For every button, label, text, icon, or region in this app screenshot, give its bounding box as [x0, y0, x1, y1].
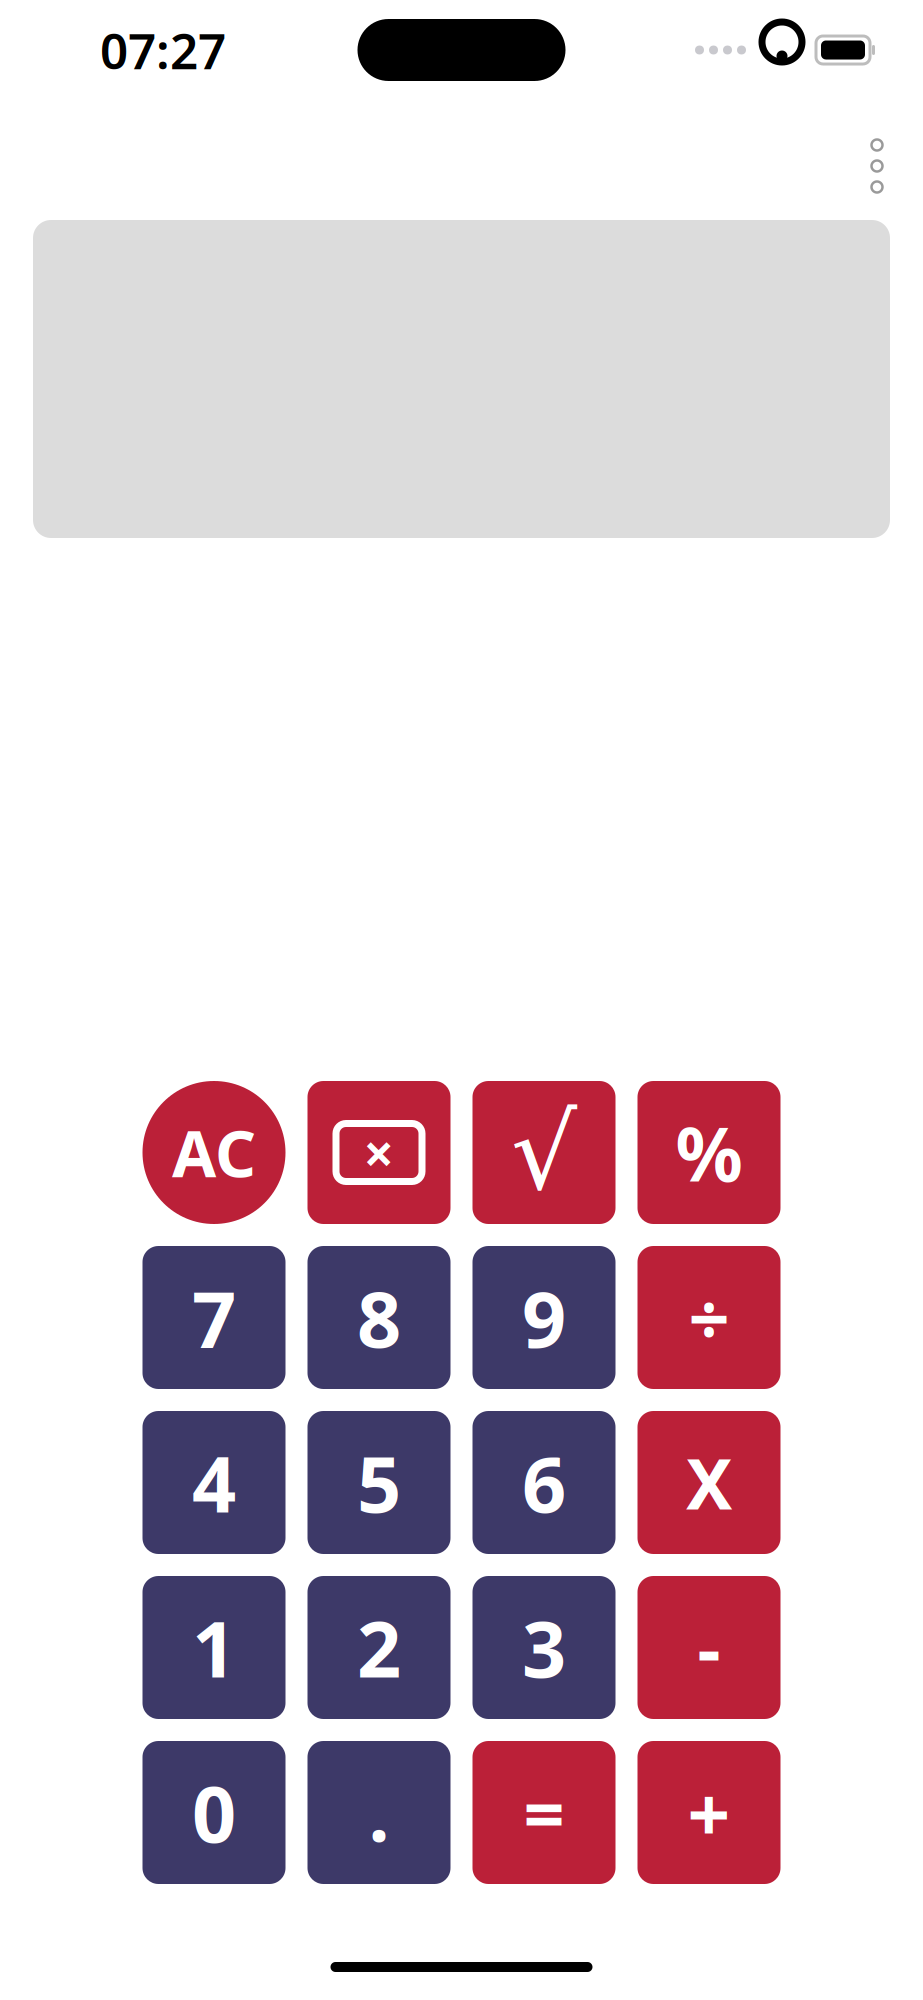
button[interactable]: ÷ [637, 1246, 780, 1389]
button[interactable]: = [472, 1741, 615, 1884]
button[interactable]: % [637, 1081, 780, 1224]
button[interactable]: X [637, 1411, 780, 1554]
button[interactable]: More options [851, 126, 903, 206]
button[interactable]: 4 [142, 1411, 285, 1554]
button[interactable]: 9 [472, 1246, 615, 1389]
button[interactable]: 7 [142, 1246, 285, 1389]
button[interactable]: 6 [472, 1411, 615, 1554]
button[interactable]: Backspace [307, 1081, 450, 1224]
button[interactable]: 5 [307, 1411, 450, 1554]
staticText: % [675, 1103, 742, 1202]
staticText: 7 [192, 1266, 236, 1369]
staticText: 2 [357, 1596, 401, 1699]
staticText: 9 [522, 1266, 566, 1369]
button[interactable]: 1 [142, 1576, 285, 1719]
button[interactable]: 3 [472, 1576, 615, 1719]
button[interactable]: . [307, 1741, 450, 1884]
button[interactable]: 0 [142, 1741, 285, 1884]
staticText: AC [172, 1110, 256, 1195]
staticText: 0 [192, 1761, 236, 1864]
staticText: 3 [522, 1596, 566, 1699]
staticText: × [363, 1117, 394, 1188]
button[interactable]: 8 [307, 1246, 450, 1389]
button[interactable]: AC [142, 1081, 285, 1224]
staticText: 5 [357, 1431, 401, 1534]
staticText: = [523, 1765, 564, 1860]
button[interactable]: Square root [472, 1081, 615, 1224]
staticText: + [687, 1763, 730, 1862]
staticText: 8 [357, 1266, 401, 1369]
staticText: 07:27 [100, 17, 226, 83]
staticText: √ [511, 1093, 577, 1211]
button[interactable]: + [637, 1741, 780, 1884]
staticText: 1 [192, 1596, 236, 1699]
staticText: 4 [192, 1431, 236, 1534]
staticText: ÷ [688, 1270, 729, 1365]
staticText: 6 [522, 1431, 566, 1534]
button[interactable]: 2 [307, 1576, 450, 1719]
staticText: X [686, 1436, 732, 1529]
staticText: . [368, 1763, 389, 1862]
staticText: - [697, 1600, 720, 1695]
button[interactable]: - [637, 1576, 780, 1719]
